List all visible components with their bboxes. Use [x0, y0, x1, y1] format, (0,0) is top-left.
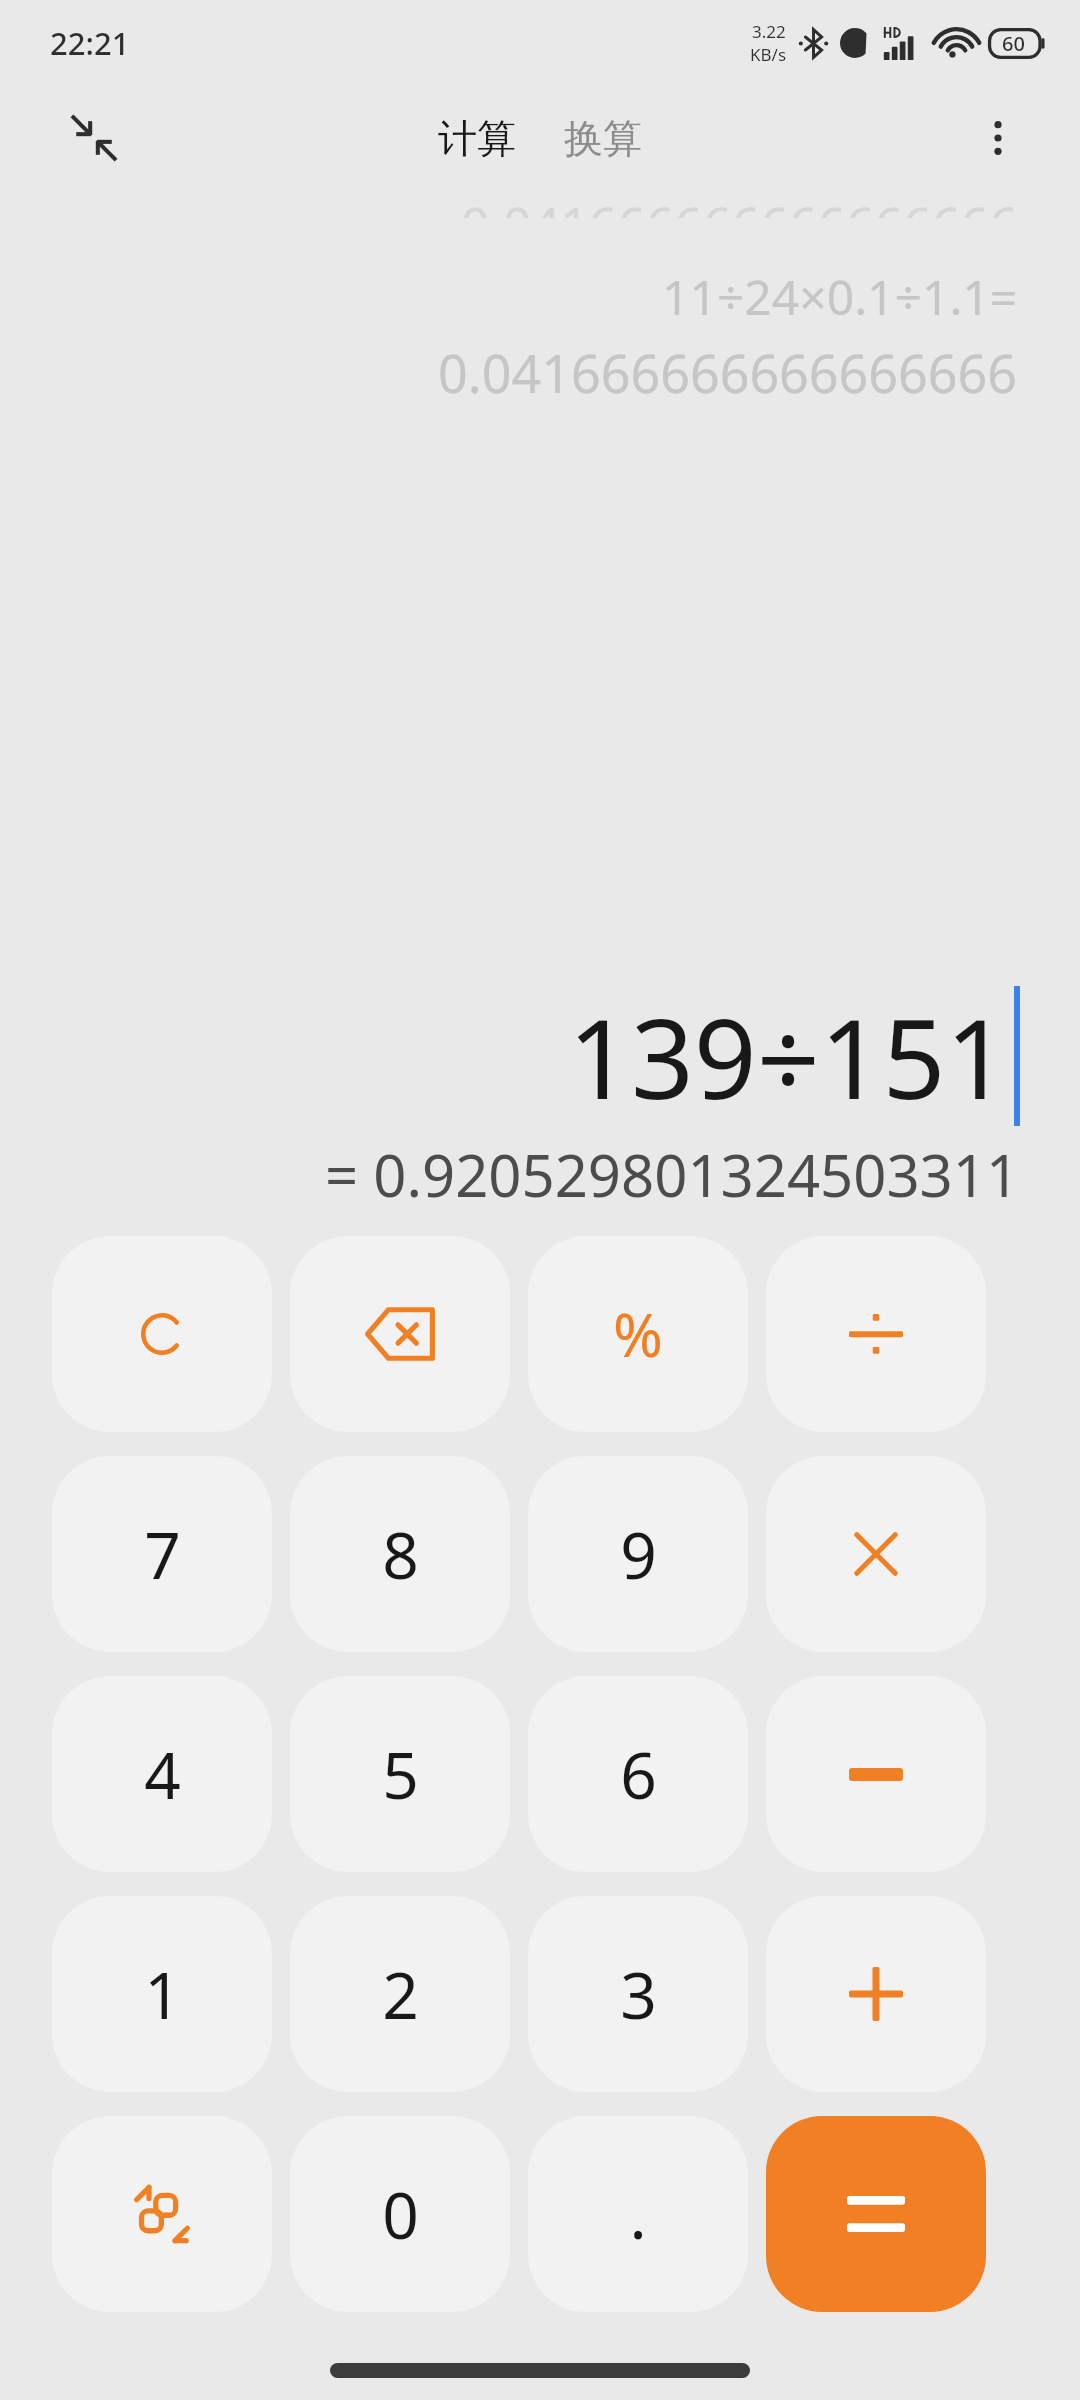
button[interactable]: 1: [52, 1896, 272, 2092]
button[interactable]: 0: [290, 2116, 510, 2312]
staticText: 7: [144, 1511, 181, 1598]
button[interactable]: More options: [960, 100, 1036, 176]
staticText: = 0.920529801324503311: [325, 1135, 1020, 1214]
staticText: 2: [382, 1951, 419, 2038]
button[interactable]: 2: [290, 1896, 510, 2092]
staticText: 1: [144, 1951, 181, 2038]
button[interactable]: Divide: [766, 1236, 986, 1432]
staticText: 11÷24×0.1÷1.1=: [662, 264, 1018, 329]
button[interactable]: 计算: [426, 102, 528, 175]
staticText: 0.041666666666666666: [438, 337, 1018, 408]
staticText: %: [613, 1293, 663, 1375]
staticText: 60: [1002, 30, 1025, 57]
staticText: 3: [620, 1951, 657, 2038]
staticText: 6: [620, 1731, 657, 1818]
button[interactable]: Plus: [766, 1896, 986, 2092]
staticText: 8: [382, 1511, 419, 1598]
button[interactable]: Collapse: [56, 100, 132, 176]
button[interactable]: 4: [52, 1676, 272, 1872]
staticText: 4: [144, 1731, 181, 1818]
button[interactable]: 6: [528, 1676, 748, 1872]
button[interactable]: Clear: [52, 1236, 272, 1432]
button[interactable]: 9: [528, 1456, 748, 1652]
button[interactable]: 换算: [552, 102, 654, 175]
button[interactable]: 5: [290, 1676, 510, 1872]
button[interactable]: 8: [290, 1456, 510, 1652]
staticText: 22:21: [50, 22, 130, 64]
button[interactable]: Equals: [766, 2116, 986, 2312]
staticText: 换算: [564, 114, 642, 163]
button[interactable]: .: [528, 2116, 748, 2312]
staticText: 3.22: [752, 20, 786, 43]
button[interactable]: 3: [528, 1896, 748, 2092]
staticText: 计算: [438, 114, 516, 163]
button[interactable]: Scientific mode: [52, 2116, 272, 2312]
staticText: 139÷151: [568, 981, 1009, 1131]
staticText: 9: [620, 1511, 657, 1598]
button[interactable]: 7: [52, 1456, 272, 1652]
staticText: 0.041666666666666666: [461, 190, 1018, 218]
staticText: 0: [382, 2171, 419, 2258]
button[interactable]: Multiply: [766, 1456, 986, 1652]
staticText: KB/s: [750, 43, 787, 66]
staticText: 5: [382, 1731, 419, 1818]
button[interactable]: Minus: [766, 1676, 986, 1872]
button[interactable]: Percent: [528, 1236, 748, 1432]
button[interactable]: Backspace: [290, 1236, 510, 1432]
staticText: .: [629, 2171, 647, 2258]
